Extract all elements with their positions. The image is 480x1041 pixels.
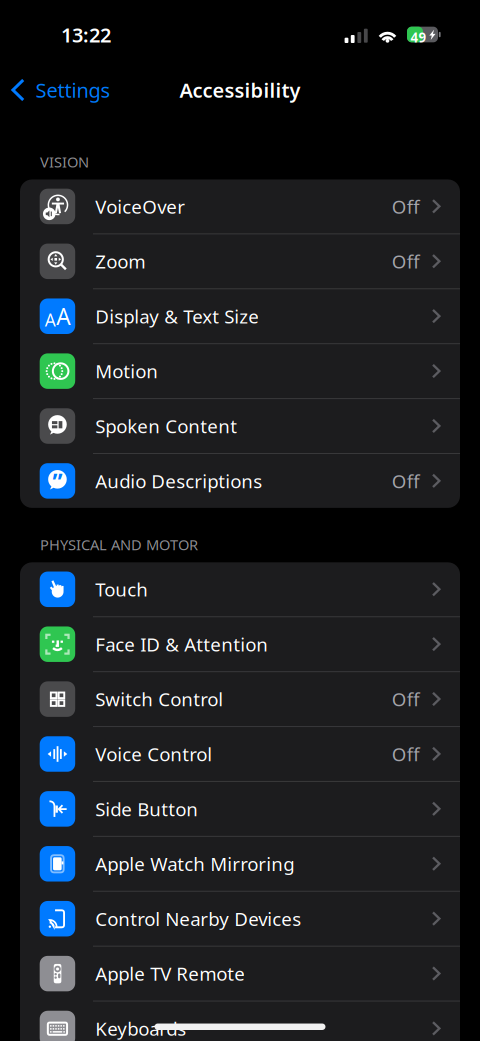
button[interactable]: VoiceOver (20, 179, 460, 233)
staticText: Off (392, 249, 420, 274)
button[interactable]: Touch (20, 562, 460, 616)
staticText: 13:22 (61, 21, 111, 48)
staticText: Control Nearby Devices (95, 906, 301, 931)
button[interactable]: Zoom (20, 234, 460, 288)
button[interactable]: A (20, 289, 460, 343)
staticText: Apple TV Remote (95, 961, 245, 986)
staticText: Switch Control (95, 687, 223, 711)
staticText: Zoom (95, 249, 145, 274)
staticText: Keyboards (95, 1016, 186, 1041)
staticText: 49 (411, 28, 427, 46)
staticText: Off (392, 742, 420, 766)
button[interactable]: ” (20, 454, 460, 508)
staticText: Touch (95, 577, 148, 602)
staticText: VISION (40, 152, 89, 171)
staticText: A (45, 308, 56, 331)
staticText: Face ID & Attention (95, 632, 268, 657)
staticText: VoiceOver (95, 194, 185, 219)
button[interactable]: Settings (11, 70, 110, 110)
button[interactable]: Face ID & Attention (20, 617, 460, 671)
button[interactable]: Motion (20, 344, 460, 398)
staticText: Off (392, 194, 420, 219)
button[interactable]: Spoken Content (20, 399, 460, 453)
staticText: ” (52, 467, 62, 497)
button[interactable]: Apple Watch Mirroring (20, 837, 460, 891)
staticText: PHYSICAL AND MOTOR (40, 535, 198, 554)
button[interactable]: Control Nearby Devices (20, 892, 460, 946)
button[interactable]: Voice Control (20, 727, 460, 781)
staticText: A (56, 301, 70, 331)
staticText: Settings (35, 77, 110, 103)
staticText: Off (392, 468, 420, 493)
staticText: Display & Text Size (95, 304, 259, 329)
staticText: Audio Descriptions (95, 468, 262, 493)
button[interactable]: Keyboards (20, 1002, 460, 1041)
button[interactable]: Apple TV Remote (20, 947, 460, 1001)
staticText: Spoken Content (95, 414, 237, 438)
staticText: Motion (95, 359, 158, 383)
staticText: Apple Watch Mirroring (95, 851, 294, 876)
button[interactable]: Side Button (20, 782, 460, 836)
staticText: Accessibility (179, 77, 300, 103)
button[interactable]: Switch Control (20, 672, 460, 726)
staticText: Side Button (95, 796, 198, 821)
staticText: Off (392, 687, 420, 711)
staticText: Voice Control (95, 742, 212, 766)
